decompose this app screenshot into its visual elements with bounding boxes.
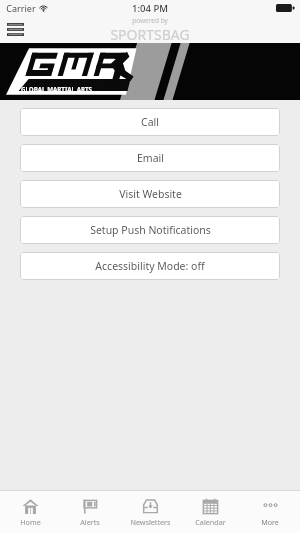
button[interactable]: Newsletters [120,491,180,533]
staticText: Accessibility Mode: off [95,259,205,273]
staticText: Setup Push Notifications [90,223,211,237]
staticText: Calendar [195,517,226,527]
button[interactable]: Call [20,108,280,136]
button[interactable]: Calendar [180,491,240,533]
staticText: Newsletters [130,517,171,527]
button[interactable]: Accessibility Mode: off [20,252,280,280]
staticText: Visit Website [119,187,182,201]
staticText: Carrier [6,2,36,14]
staticText: powered by [132,16,168,25]
staticText: More [261,517,279,527]
button[interactable]: Email [20,144,280,172]
staticText: Home [20,517,41,527]
button[interactable]: Menu [0,16,30,43]
button[interactable]: More [240,491,300,533]
button[interactable]: Alerts [60,491,120,533]
button[interactable]: Home [0,491,60,533]
button[interactable]: Setup Push Notifications [20,216,280,244]
staticText: Call [141,115,159,129]
staticText: 1:04 PM [132,2,168,15]
button[interactable]: Visit Website [20,180,280,208]
staticText: Email [137,151,164,165]
staticText: Alerts [80,517,100,527]
staticText: GLOBAL MARTIAL ARTS [21,85,92,93]
staticText: SPORTSBAG [110,25,190,43]
